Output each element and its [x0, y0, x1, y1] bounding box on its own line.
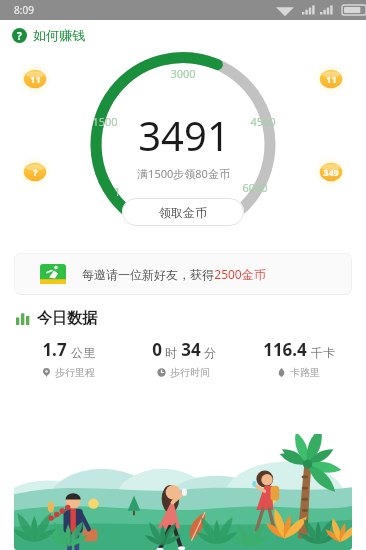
staticText: 349 — [323, 166, 339, 178]
staticText: 1500 — [92, 114, 118, 129]
staticText: ? — [33, 166, 38, 178]
staticText: 2500金币 — [214, 266, 266, 282]
staticText: 4500 — [250, 114, 276, 129]
staticText: 时 — [165, 345, 177, 360]
staticText: 步行里程 — [55, 366, 95, 379]
staticText: 领取金币 — [159, 205, 207, 220]
button[interactable]: Coin 349 — [314, 155, 348, 189]
staticText: 卡路里 — [290, 366, 320, 379]
button[interactable]: Coin ? — [18, 155, 52, 189]
staticText: 如何赚钱 — [33, 27, 85, 43]
staticText: 分 — [204, 345, 216, 360]
staticText: 11 — [30, 73, 41, 85]
staticText: 1.7 — [42, 338, 67, 361]
staticText: 今日数据 — [37, 309, 97, 328]
button[interactable]: 领取金币 — [122, 198, 244, 226]
staticText: 步行时间 — [170, 366, 210, 379]
button[interactable]: 0 — [126, 338, 241, 379]
staticText: 千卡 — [311, 345, 335, 360]
staticText: ? — [17, 29, 22, 43]
staticText: 6000 — [242, 180, 268, 195]
staticText: 3491 — [138, 108, 230, 162]
button[interactable]: Coin 11 — [314, 62, 348, 96]
button[interactable]: 每邀请一位新好友，获得 — [14, 253, 352, 295]
staticText: 8:09 — [14, 3, 34, 17]
staticText: 公里 — [71, 345, 95, 360]
staticText: 0 — [152, 338, 162, 361]
staticText: 116.4 — [263, 338, 307, 361]
staticText: 34 — [181, 338, 201, 361]
staticText: 1 — [114, 184, 121, 199]
button[interactable]: 116.4 — [241, 338, 356, 379]
staticText: 每邀请一位新好友，获得 — [82, 267, 214, 282]
staticText: 11 — [326, 73, 337, 85]
button[interactable]: 1.7 — [10, 338, 126, 379]
staticText: 满1500步领80金币 — [137, 166, 230, 181]
staticText: 3000 — [170, 66, 196, 81]
button[interactable]: ? — [0, 20, 366, 50]
button[interactable]: Coin 11 — [18, 62, 52, 96]
